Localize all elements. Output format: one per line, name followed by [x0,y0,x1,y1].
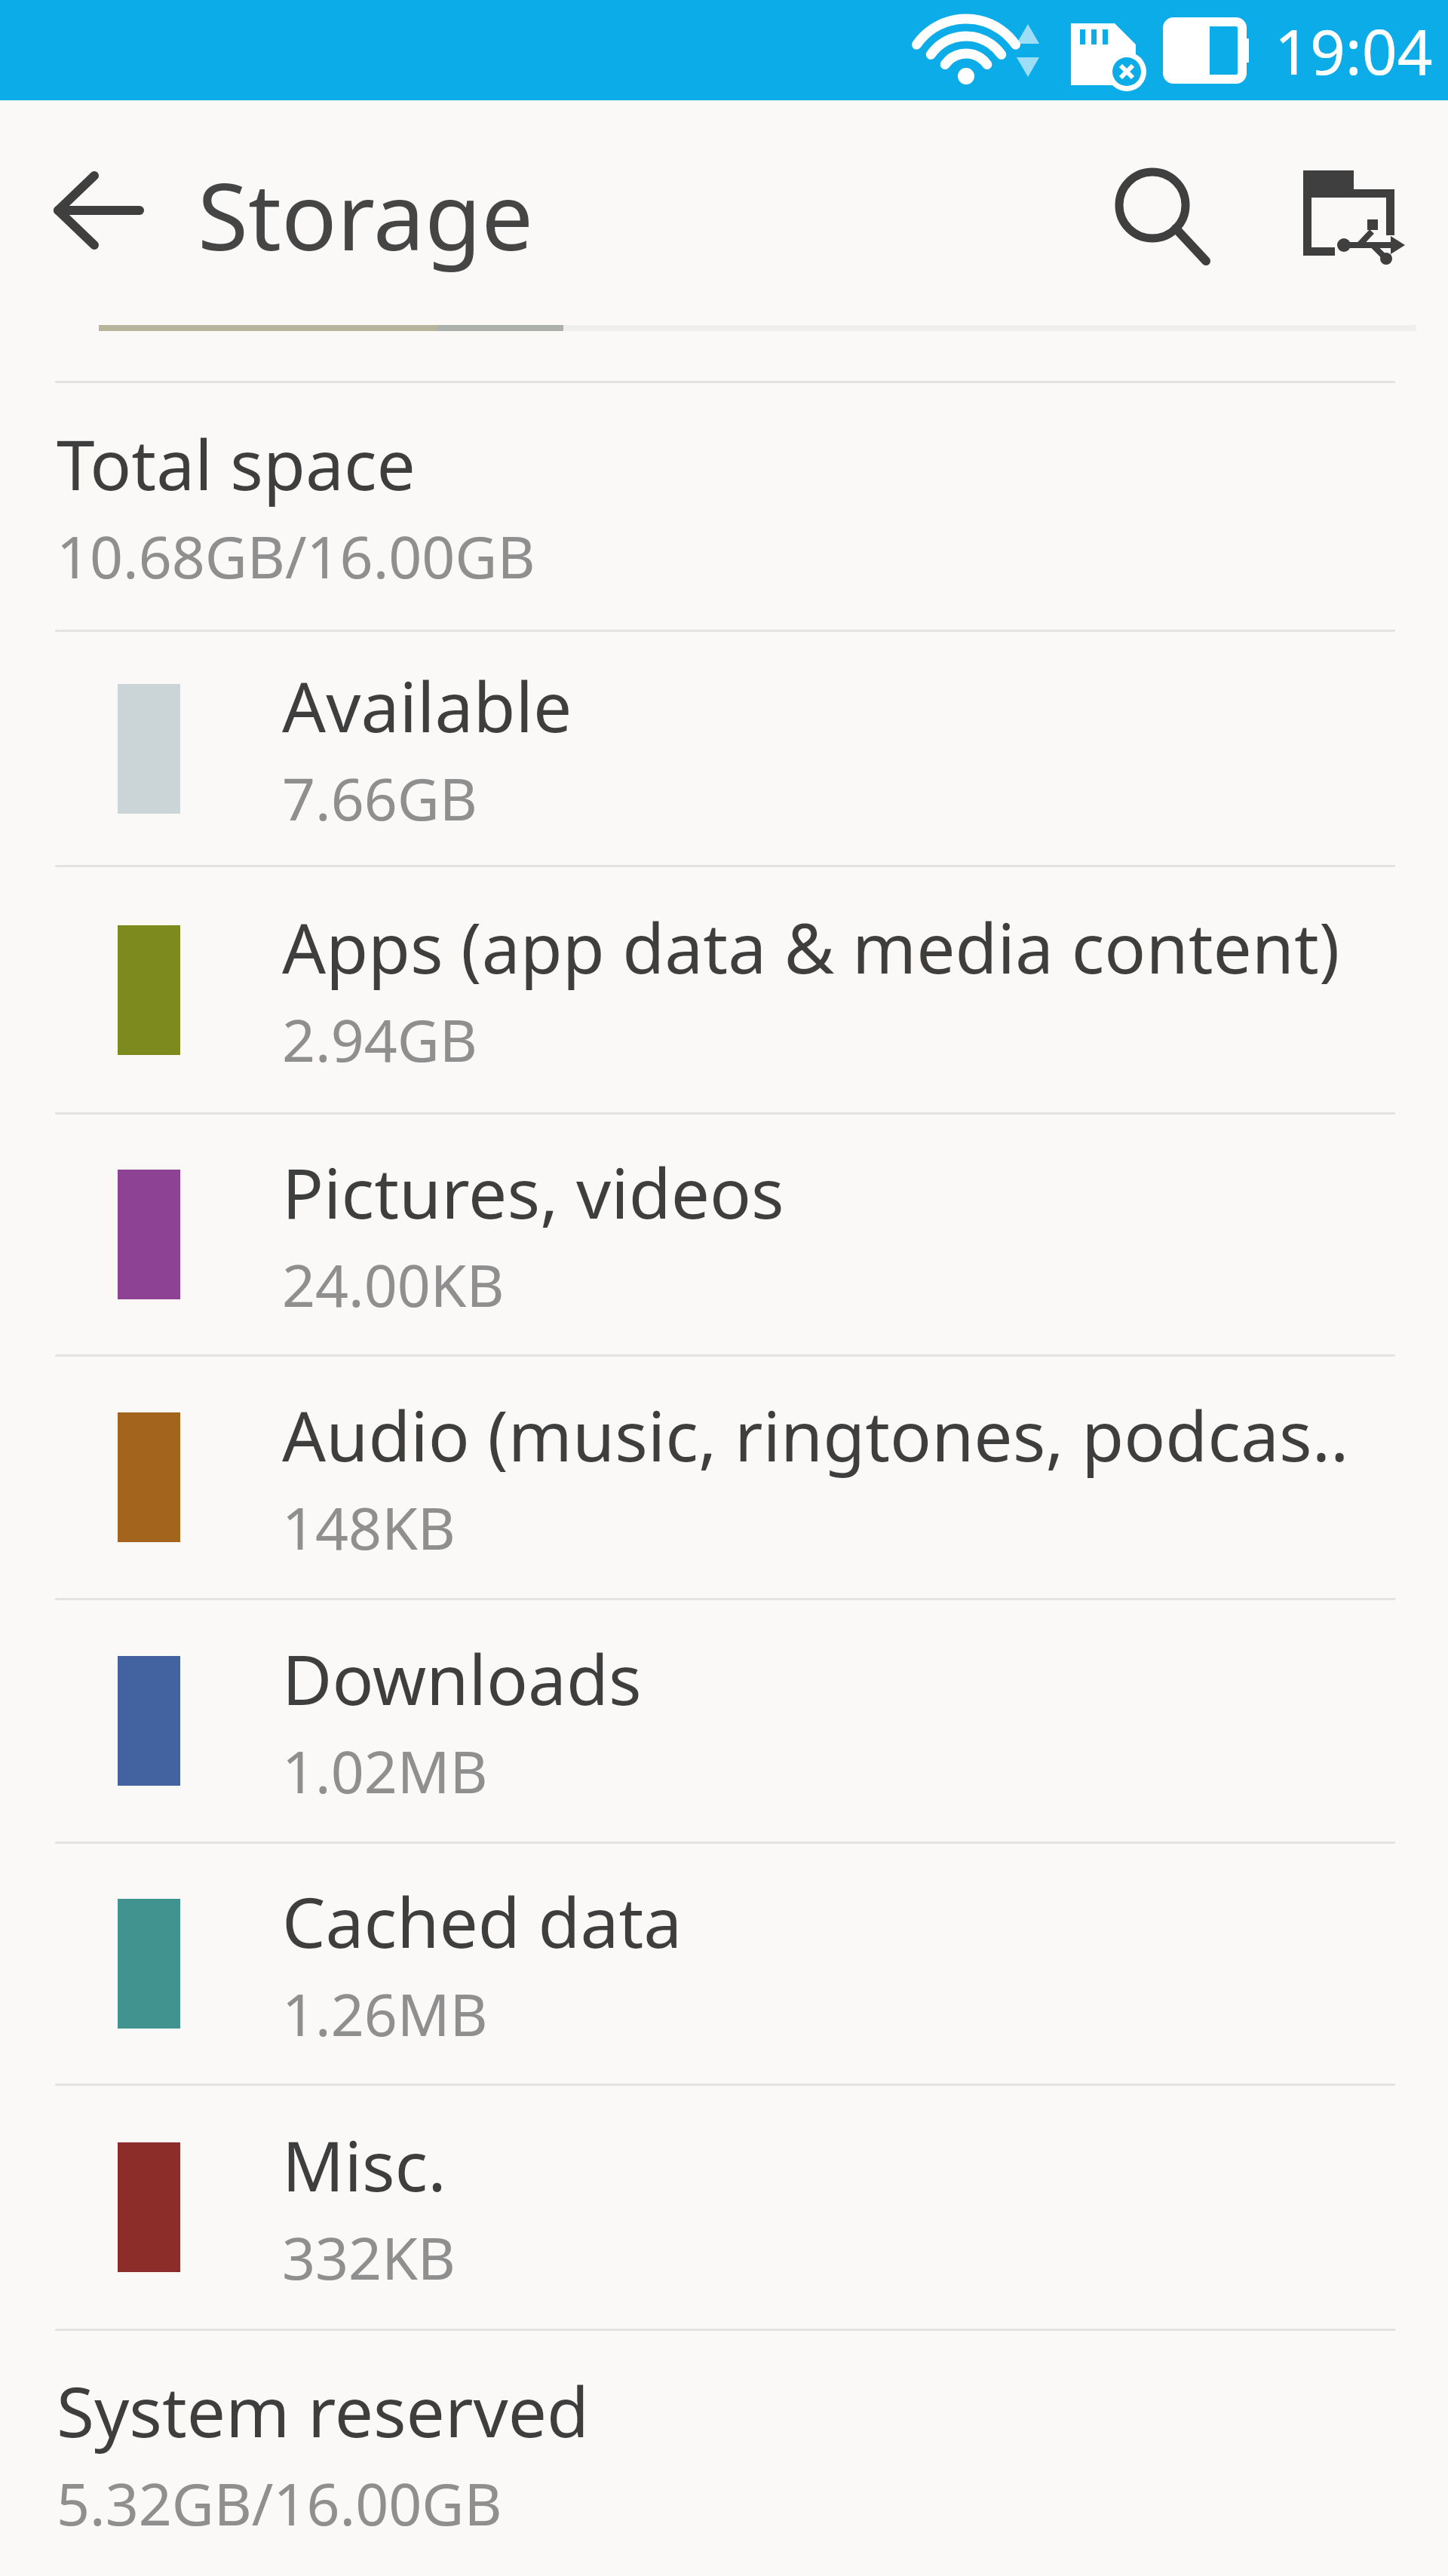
staticText: 332KB [282,2218,456,2297]
button[interactable]: Pictures, videos [0,1115,1448,1354]
staticText: 5.32GB/16.00GB [57,2464,502,2543]
staticText: 1.26MB [282,1974,488,2053]
button[interactable]: Cached data [0,1844,1448,2084]
staticText: 7.66GB [282,759,477,838]
button[interactable]: Total space [0,383,1448,630]
button[interactable]: System reserved [0,2331,1448,2575]
button[interactable]: Apps (app data & media content) [0,867,1448,1112]
staticText: Storage [198,152,534,278]
staticText: Pictures, videos [282,1145,784,1239]
button[interactable]: Audio (music, ringtones, podcas.. [0,1357,1448,1598]
staticText: 10.68GB/16.00GB [57,517,535,596]
staticText: System reserved [57,2364,589,2458]
staticText: 148KB [282,1488,456,1567]
staticText: Audio (music, ringtones, podcas.. [282,1388,1349,1482]
staticText: 1.02MB [282,1731,488,1811]
staticText: 2.94GB [282,1000,477,1079]
button[interactable] [1293,154,1406,267]
staticText: Available [282,659,572,753]
button[interactable]: Misc. [0,2086,1448,2329]
button[interactable]: Available [0,632,1448,865]
staticText: 24.00KB [282,1245,505,1324]
button[interactable] [30,143,166,278]
staticText: Downloads [282,1632,642,1725]
staticText: Misc. [282,2118,446,2212]
button[interactable]: Downloads [0,1600,1448,1842]
staticText: Total space [57,417,416,511]
staticText: 19:04 [1275,8,1433,93]
button[interactable] [1119,158,1225,263]
staticText: Apps (app data & media content) [282,900,1340,994]
staticText: Cached data [282,1875,683,1968]
